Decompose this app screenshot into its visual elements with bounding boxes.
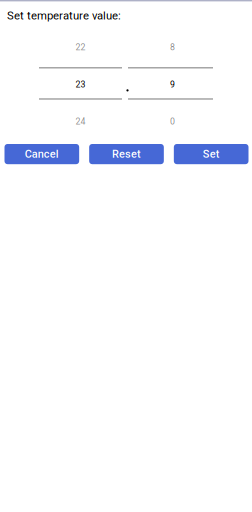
button[interactable]: Cancel [4,144,79,164]
staticText: 22 [75,42,85,52]
button[interactable]: Set [174,144,248,164]
staticText: 8 [170,42,175,52]
staticText: Set [203,148,220,160]
staticText: 23 [75,79,85,89]
staticText: 9 [170,79,175,89]
staticText: 0 [170,116,175,127]
staticText: 24 [75,116,85,127]
button[interactable]: Reset [89,144,164,164]
staticText: Set temperature value: [7,9,121,22]
staticText: Reset [112,148,141,160]
staticText: Cancel [25,148,59,160]
